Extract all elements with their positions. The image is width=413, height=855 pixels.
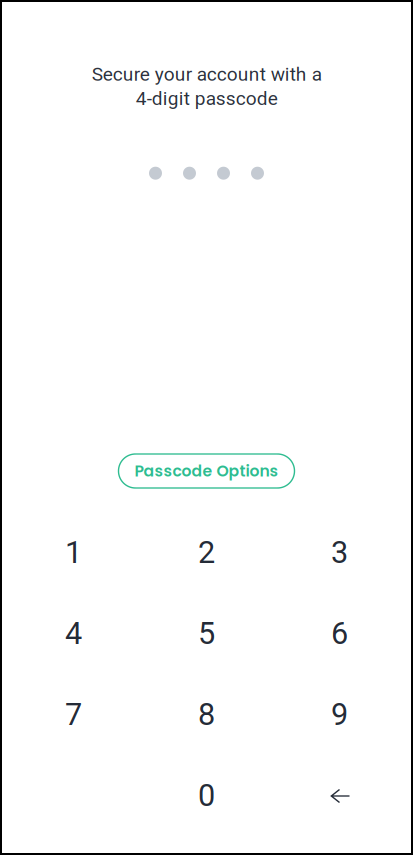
staticText: 1 <box>65 534 82 570</box>
staticText: 2 <box>198 534 215 570</box>
staticText: 7 <box>65 696 82 732</box>
button[interactable]: Delete <box>273 755 406 836</box>
button[interactable]: 6 <box>273 593 406 674</box>
staticText: 4 <box>65 615 82 651</box>
button[interactable]: 0 <box>140 755 273 836</box>
staticText: Passcode Options <box>134 460 278 482</box>
button[interactable]: Passcode Options <box>118 454 294 488</box>
button[interactable]: 2 <box>140 512 273 593</box>
staticText: 5 <box>198 615 215 651</box>
staticText: 3 <box>331 534 348 570</box>
button[interactable]: 8 <box>140 674 273 755</box>
button[interactable]: 9 <box>273 674 406 755</box>
button[interactable]: 7 <box>7 674 140 755</box>
button[interactable]: 3 <box>273 512 406 593</box>
button[interactable]: 4 <box>7 593 140 674</box>
button[interactable]: 5 <box>140 593 273 674</box>
staticText: 8 <box>198 696 215 732</box>
button[interactable]: 1 <box>7 512 140 593</box>
staticText: 0 <box>198 777 215 813</box>
staticText: 9 <box>331 696 348 732</box>
staticText: Secure your account with a 4-digit passc… <box>91 63 321 110</box>
staticText: 6 <box>331 615 348 651</box>
